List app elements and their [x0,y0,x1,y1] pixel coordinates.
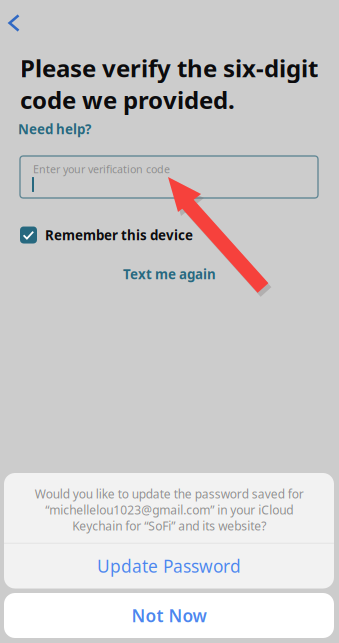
button[interactable]: Not Now [4,593,334,638]
button[interactable]: Update Password [4,543,334,588]
button[interactable]: Back [0,3,36,43]
button[interactable]: Need help? [18,119,108,139]
staticText: Would you like to update the password sa… [34,486,303,534]
staticText: Update Password [97,554,241,577]
staticText: Text me again [123,265,216,283]
button[interactable]: Remember this device [20,225,270,245]
button[interactable]: Enter your verification code [20,156,318,198]
staticText: Please verify the six-digit code we prov… [20,52,318,116]
button[interactable]: Text me again [0,262,339,286]
staticText: Not Now [131,604,206,627]
staticText: Enter your verification code [33,162,170,176]
staticText: Remember this device [45,226,193,244]
staticText: Need help? [18,120,91,138]
